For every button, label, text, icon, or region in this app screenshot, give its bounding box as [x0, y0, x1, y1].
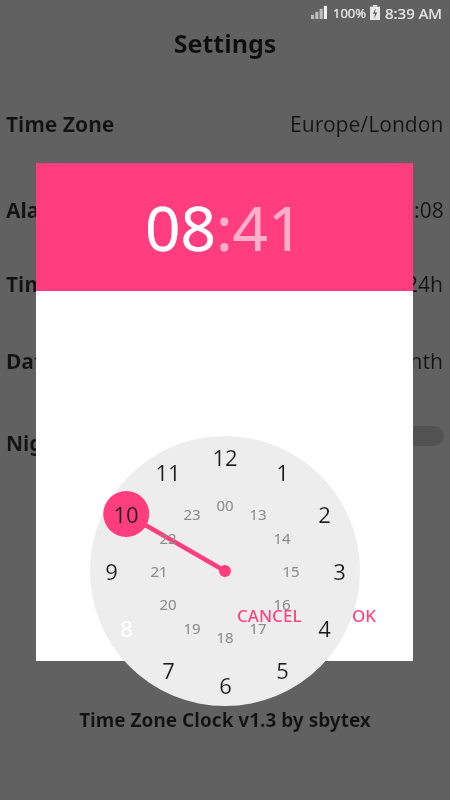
- staticText: Europe/London: [290, 110, 444, 139]
- button[interactable]: 21: [137, 555, 181, 587]
- staticText: 2: [318, 499, 331, 529]
- button[interactable]: 8: [104, 612, 148, 644]
- staticText: 16: [273, 594, 291, 614]
- button[interactable]: Time format: [0, 267, 450, 301]
- button[interactable]: 22: [146, 522, 190, 554]
- staticText: 08:41: [145, 185, 304, 269]
- staticText: Time Zone: [6, 110, 115, 139]
- staticText: OK: [352, 604, 377, 627]
- button[interactable]: 08:41: [36, 163, 413, 291]
- button[interactable]: 11: [146, 456, 190, 488]
- staticText: CANCEL: [237, 604, 302, 627]
- staticText: 8: [120, 613, 133, 643]
- button[interactable]: 17: [236, 612, 280, 644]
- button[interactable]: Time Zone: [0, 107, 450, 141]
- button[interactable]: 12: [203, 441, 247, 473]
- staticText: day/month: [334, 347, 444, 376]
- staticText: 9: [105, 556, 118, 586]
- staticText: 14: [273, 528, 291, 548]
- button[interactable]: Night mode: [0, 426, 450, 460]
- staticText: 11: [155, 457, 181, 487]
- button[interactable]: 7: [146, 654, 190, 686]
- staticText: 21: [150, 561, 168, 581]
- staticText: 08:08: [390, 196, 444, 225]
- staticText: 17: [249, 618, 267, 638]
- staticText: 10: [113, 499, 139, 529]
- button[interactable]: 6: [203, 669, 247, 701]
- button[interactable]: 00: [203, 489, 247, 521]
- button[interactable]: 9: [89, 555, 133, 587]
- button[interactable]: 10: [104, 498, 148, 530]
- button[interactable]: Date format: [0, 344, 450, 378]
- button[interactable]: 2: [302, 498, 346, 530]
- staticText: Time format: [6, 270, 136, 299]
- staticText: 7: [162, 655, 175, 685]
- staticText: 24h: [406, 270, 444, 299]
- button[interactable]: 3: [317, 555, 361, 587]
- staticText: 22: [159, 528, 177, 548]
- staticText: 8:39 AM: [385, 3, 442, 23]
- staticText: 1: [276, 457, 289, 487]
- button[interactable]: 18: [203, 621, 247, 653]
- staticText: 00: [216, 495, 234, 515]
- button[interactable]: 20: [146, 588, 190, 620]
- staticText: 12: [212, 442, 238, 472]
- staticText: 20: [159, 594, 177, 614]
- button[interactable]: OK: [338, 596, 391, 635]
- staticText: 23: [183, 504, 201, 524]
- button[interactable]: 19: [170, 612, 214, 644]
- staticText: 5: [276, 655, 289, 685]
- staticText: 4: [318, 613, 331, 643]
- staticText: 15: [282, 561, 300, 581]
- staticText: 3: [333, 556, 346, 586]
- button[interactable]: CANCEL: [223, 596, 316, 635]
- staticText: 19: [183, 618, 201, 638]
- button[interactable]: 4: [302, 612, 346, 644]
- staticText: 100%: [333, 4, 367, 22]
- button[interactable]: 13: [236, 498, 280, 530]
- staticText: 13: [249, 504, 267, 524]
- staticText: Night mode: [6, 429, 131, 458]
- staticText: Date format: [6, 347, 134, 376]
- button[interactable]: 16: [260, 588, 304, 620]
- staticText: 18: [216, 627, 234, 647]
- button[interactable]: 14: [260, 522, 304, 554]
- button[interactable]: 23: [170, 498, 214, 530]
- staticText: 6: [219, 670, 232, 700]
- button[interactable]: 5: [260, 654, 304, 686]
- button[interactable]: 1: [260, 456, 304, 488]
- button[interactable]: Alarm: [0, 193, 450, 227]
- staticText: Alarm: [6, 196, 70, 225]
- staticText: Time Zone Clock v1.3 by sbytex: [0, 707, 450, 733]
- staticText: Settings: [0, 26, 450, 60]
- button[interactable]: 15: [269, 555, 313, 587]
